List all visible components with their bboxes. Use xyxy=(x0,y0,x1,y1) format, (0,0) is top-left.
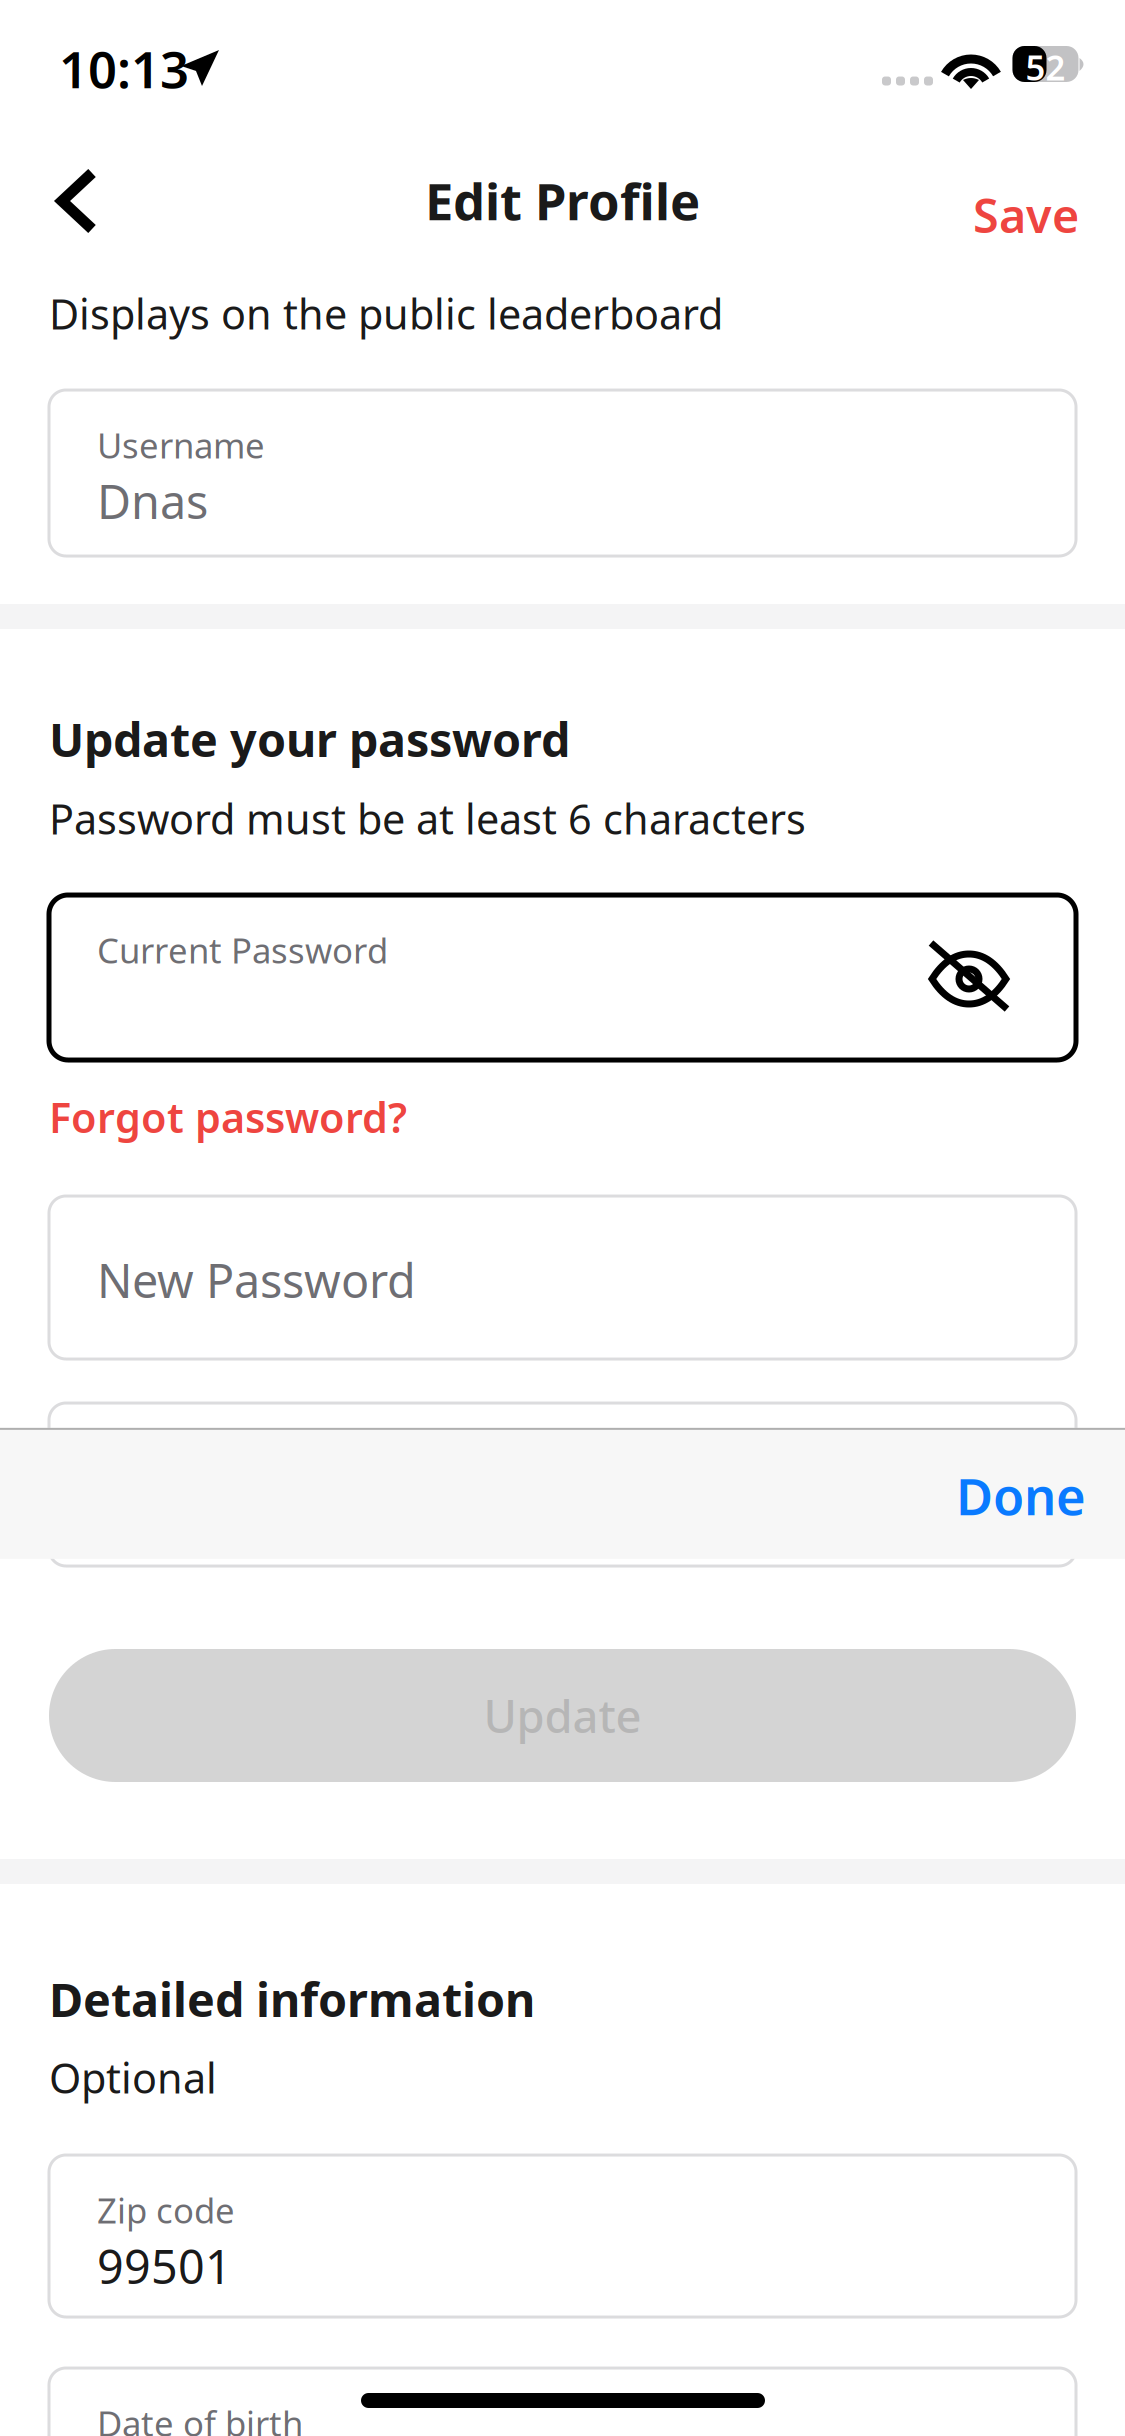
staticText: Current Password xyxy=(97,927,388,973)
staticText: Zip code xyxy=(97,2187,235,2233)
staticText: Update your password xyxy=(49,708,570,770)
button[interactable]: Save xyxy=(923,150,1125,280)
button[interactable]: Back xyxy=(0,136,148,266)
button[interactable]: Update xyxy=(49,1649,1076,1782)
staticText: Forgot password? xyxy=(49,1090,407,1144)
staticText: Update xyxy=(483,1685,641,1746)
staticText: Done xyxy=(956,1462,1086,1529)
staticText: Displays on the public leaderboard xyxy=(49,286,723,341)
staticText: Password must be at least 6 characters xyxy=(49,791,806,846)
staticText: 10:13 xyxy=(59,35,189,102)
button[interactable]: Show password xyxy=(909,923,1029,1029)
staticText: Dnas xyxy=(97,470,208,532)
button[interactable]: Forgot password? xyxy=(49,1089,569,1145)
staticText: New Password xyxy=(97,1249,416,1311)
staticText: Date of birth xyxy=(97,2400,303,2436)
staticText: Detailed information xyxy=(49,1968,535,2030)
staticText: Username xyxy=(97,422,265,468)
button[interactable]: Done xyxy=(904,1428,1125,1563)
staticText: 52 xyxy=(1025,44,1065,90)
staticText: Optional xyxy=(49,2050,217,2105)
staticText: 99501 xyxy=(97,2235,232,2297)
staticText: Save xyxy=(973,184,1079,246)
staticText: Edit Profile xyxy=(425,167,700,234)
